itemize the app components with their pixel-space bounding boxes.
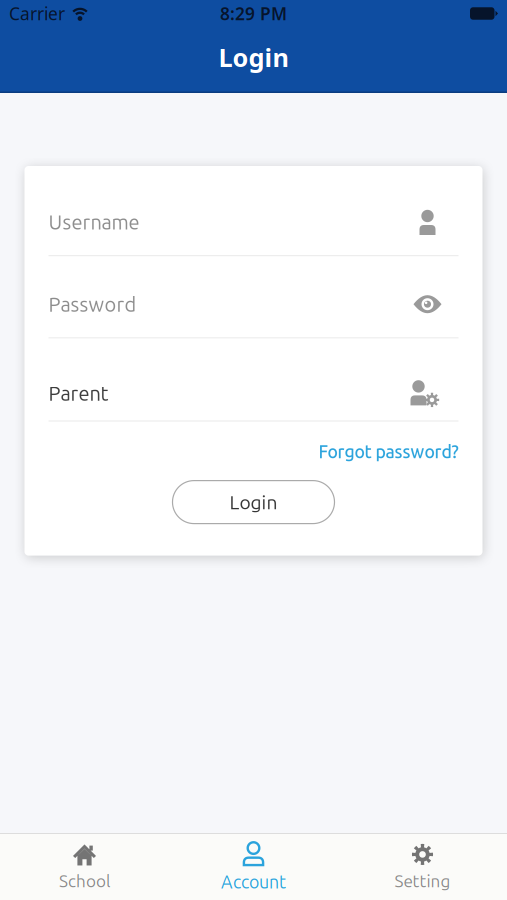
staticText: Setting: [394, 871, 450, 890]
button[interactable]: Show password: [413, 294, 458, 315]
staticText: 8:29 PM: [220, 2, 287, 25]
button[interactable]: Account: [169, 834, 338, 900]
button[interactable]: Parent: [48, 371, 458, 415]
staticText: Account: [221, 872, 286, 892]
button[interactable]: Login: [172, 481, 334, 524]
staticText: Password: [48, 293, 136, 315]
staticText: Carrier: [9, 2, 65, 25]
staticText: Login: [229, 491, 277, 513]
staticText: Parent: [48, 382, 108, 405]
button[interactable]: Forgot password?: [318, 442, 458, 461]
staticText: Login: [218, 40, 288, 74]
button[interactable]: School: [0, 834, 169, 900]
button[interactable]: Password: [48, 282, 458, 326]
button[interactable]: Username: [48, 200, 458, 244]
staticText: Forgot password?: [318, 442, 458, 461]
staticText: School: [59, 871, 110, 890]
button[interactable]: Setting: [338, 834, 507, 900]
staticText: Username: [48, 211, 139, 233]
